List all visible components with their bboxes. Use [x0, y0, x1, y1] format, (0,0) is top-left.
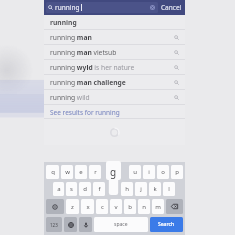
staticText: g — [110, 165, 117, 179]
staticText: u — [133, 168, 137, 176]
button[interactable]: 123 — [46, 217, 62, 232]
button[interactable]: v — [110, 199, 122, 214]
button[interactable]: running — [46, 2, 158, 13]
button[interactable]: i — [143, 165, 155, 179]
button[interactable]: x — [81, 199, 94, 214]
button[interactable]: Backspace — [166, 199, 183, 214]
button[interactable]: s — [66, 182, 77, 196]
staticText: i — [148, 168, 150, 176]
button[interactable]: p — [171, 165, 183, 179]
staticText: l — [168, 185, 170, 193]
staticText: running man vietsub — [50, 48, 117, 57]
button[interactable]: n — [138, 199, 150, 214]
staticText: 123 — [50, 222, 58, 228]
button[interactable]: r — [89, 165, 101, 179]
button[interactable]: running — [44, 15, 185, 30]
staticText: d — [83, 185, 87, 193]
button[interactable]: h — [121, 182, 133, 196]
staticText: m — [155, 203, 161, 211]
button[interactable]: running man vietsub — [44, 45, 185, 60]
button[interactable]: z — [66, 199, 79, 214]
button[interactable]: Emoji — [64, 217, 77, 232]
button[interactable]: Search — [150, 217, 183, 232]
staticText: j — [140, 185, 142, 193]
button[interactable]: j — [135, 182, 147, 196]
button[interactable]: space — [94, 217, 148, 232]
staticText: h — [125, 185, 129, 193]
button[interactable]: running wyld is her nature — [44, 60, 185, 75]
button[interactable]: a — [53, 182, 64, 196]
button[interactable]: b — [124, 199, 136, 214]
button[interactable]: w — [61, 165, 73, 179]
staticText: See results for running — [50, 108, 120, 117]
button[interactable]: See results for running — [44, 105, 185, 119]
button[interactable]: e — [75, 165, 87, 179]
staticText: running — [50, 18, 77, 27]
staticText: s — [70, 185, 73, 193]
button[interactable]: Voice input — [79, 217, 92, 232]
button[interactable]: running man challenge — [44, 75, 185, 90]
button[interactable]: u — [129, 165, 141, 179]
button[interactable]: d — [79, 182, 91, 196]
staticText: q — [51, 168, 55, 176]
button[interactable]: Clear text — [149, 4, 156, 11]
button[interactable]: m — [152, 199, 164, 214]
staticText: e — [79, 168, 83, 176]
staticText: running wild — [50, 93, 90, 102]
staticText: k — [153, 185, 157, 193]
staticText: b — [128, 203, 132, 211]
staticText: o — [161, 168, 165, 176]
staticText: n — [142, 203, 146, 211]
button[interactable]: l — [163, 182, 175, 196]
staticText: a — [57, 185, 61, 193]
button[interactable]: running man — [44, 30, 185, 45]
staticText: space — [114, 221, 128, 228]
button[interactable]: Shift — [46, 199, 64, 214]
staticText: running wyld is her nature — [50, 63, 135, 72]
staticText: r — [94, 168, 97, 176]
button[interactable]: running wild — [44, 90, 185, 105]
staticText: w — [65, 168, 70, 176]
staticText: Search — [158, 221, 175, 228]
staticText: p — [175, 168, 179, 176]
staticText: f — [98, 185, 101, 193]
staticText: v — [114, 203, 118, 211]
staticText: Cancel — [161, 3, 182, 12]
staticText: running man — [50, 33, 92, 42]
button[interactable]: o — [157, 165, 169, 179]
staticText: running — [55, 3, 80, 12]
staticText: c — [101, 203, 104, 211]
staticText: running man challenge — [50, 78, 126, 87]
button[interactable]: f — [93, 182, 105, 196]
button[interactable]: Cancel — [160, 3, 183, 12]
staticText: z — [71, 203, 74, 211]
staticText: x — [86, 203, 90, 211]
button[interactable]: q — [46, 165, 59, 179]
button[interactable]: k — [149, 182, 161, 196]
button[interactable]: c — [96, 199, 108, 214]
